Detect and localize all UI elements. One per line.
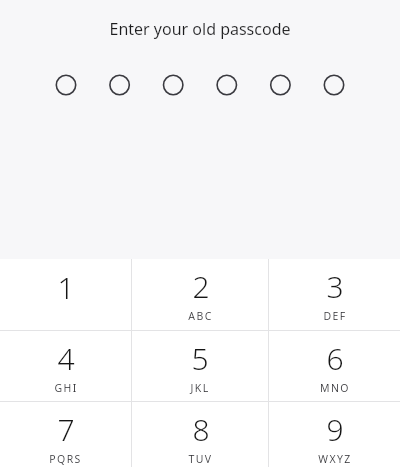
staticText: 9 xyxy=(326,409,344,450)
staticText: 3 xyxy=(326,266,344,307)
button[interactable]: 9 xyxy=(269,402,400,467)
button[interactable]: 6 xyxy=(269,331,400,401)
staticText: Enter your old passcode xyxy=(0,18,400,40)
staticText: JKL xyxy=(190,381,210,395)
staticText: 7 xyxy=(57,409,75,450)
button[interactable]: 4 xyxy=(0,331,131,401)
staticText: 5 xyxy=(191,338,209,379)
button[interactable]: 3 xyxy=(269,259,400,330)
staticText: 4 xyxy=(57,338,75,379)
staticText: MNO xyxy=(320,381,350,395)
staticText: 1 xyxy=(57,267,75,308)
button[interactable]: 2 xyxy=(132,259,268,330)
staticText: DEF xyxy=(323,309,347,323)
staticText: GHI xyxy=(54,381,78,395)
staticText: 2 xyxy=(192,266,210,307)
staticText: ABC xyxy=(188,309,213,323)
button[interactable]: 7 xyxy=(0,402,131,467)
staticText: 8 xyxy=(192,409,210,450)
staticText: TUV xyxy=(188,452,213,466)
staticText: WXYZ xyxy=(318,452,352,466)
staticText: 6 xyxy=(326,338,344,379)
button[interactable]: 5 xyxy=(132,331,268,401)
staticText: PQRS xyxy=(49,452,82,466)
button[interactable]: 1 xyxy=(0,259,131,330)
button[interactable]: 8 xyxy=(132,402,268,467)
